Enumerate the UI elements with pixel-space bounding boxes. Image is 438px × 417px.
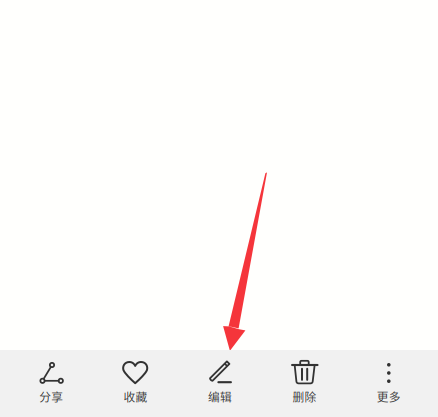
button[interactable]: 编辑 [178, 350, 262, 417]
staticText: 分享 [39, 388, 63, 405]
staticText: 更多 [377, 388, 401, 405]
button[interactable]: 分享 [9, 350, 93, 417]
button[interactable]: 更多 [347, 350, 431, 417]
button[interactable]: 删除 [262, 350, 347, 417]
button[interactable]: 收藏 [93, 350, 178, 417]
staticText: 删除 [292, 388, 316, 405]
staticText: 编辑 [208, 388, 232, 405]
staticText: 收藏 [124, 388, 148, 405]
